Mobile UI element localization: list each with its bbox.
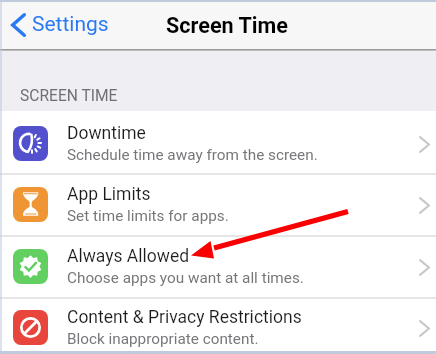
button[interactable]: Content & Privacy Restrictions xyxy=(0,299,436,352)
staticText: Block inappropriate content. xyxy=(67,330,259,348)
staticText: App Limits xyxy=(67,184,151,205)
staticText: Downtime xyxy=(67,123,146,144)
staticText: Content & Privacy Restrictions xyxy=(67,307,302,328)
staticText: Always Allowed xyxy=(67,246,190,267)
staticText: SCREEN TIME xyxy=(20,87,118,105)
staticText: Schedule time away from the screen. xyxy=(67,146,318,164)
button[interactable]: App Limits xyxy=(0,175,436,237)
button[interactable]: Settings xyxy=(0,2,119,50)
button[interactable]: Always Allowed xyxy=(0,237,436,299)
button[interactable]: Downtime xyxy=(0,111,436,175)
staticText: Screen Time xyxy=(166,13,288,38)
staticText: Set time limits for apps. xyxy=(67,207,229,225)
staticText: Settings xyxy=(32,12,109,37)
staticText: Choose apps you want at all times. xyxy=(67,269,304,287)
